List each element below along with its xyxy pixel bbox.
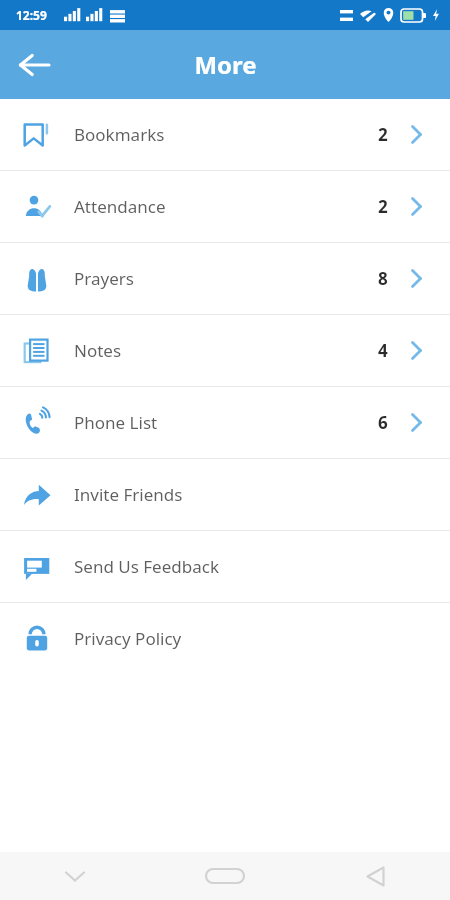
- button[interactable]: Home: [150, 852, 300, 900]
- button[interactable]: Phone List: [0, 387, 450, 458]
- button[interactable]: Attendance: [0, 171, 450, 242]
- staticText: Notes: [74, 339, 378, 362]
- staticText: Privacy Policy: [74, 627, 450, 650]
- staticText: Invite Friends: [74, 483, 450, 506]
- button[interactable]: Privacy Policy: [0, 603, 450, 674]
- button[interactable]: Bookmarks: [0, 99, 450, 170]
- staticText: 4: [378, 339, 388, 362]
- staticText: 2: [378, 195, 388, 218]
- button[interactable]: Prayers: [0, 243, 450, 314]
- staticText: Send Us Feedback: [74, 555, 450, 578]
- button[interactable]: Invite Friends: [0, 459, 450, 530]
- staticText: 2: [378, 123, 388, 146]
- button[interactable]: Notes: [0, 315, 450, 386]
- staticText: Bookmarks: [74, 123, 378, 146]
- button[interactable]: Send Us Feedback: [0, 531, 450, 602]
- staticText: 8: [378, 267, 388, 290]
- staticText: More: [194, 48, 257, 81]
- staticText: Attendance: [74, 195, 378, 218]
- staticText: 12:59: [16, 7, 47, 23]
- staticText: 6: [378, 411, 388, 434]
- button[interactable]: Back: [6, 37, 62, 93]
- staticText: Prayers: [74, 267, 378, 290]
- button[interactable]: Back: [300, 852, 450, 900]
- staticText: Phone List: [74, 411, 378, 434]
